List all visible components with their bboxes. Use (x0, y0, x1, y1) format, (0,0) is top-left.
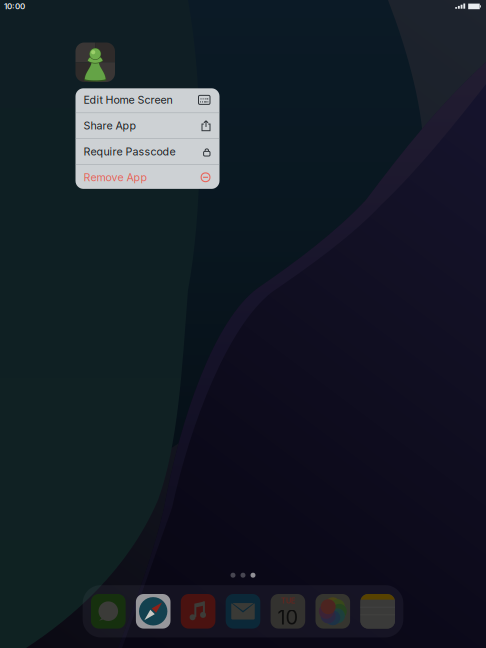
staticText: Require Passcode (83, 145, 175, 158)
button[interactable]: Share App (75, 113, 219, 138)
button[interactable]: Calendar (271, 594, 305, 629)
staticText: Edit Home Screen (83, 93, 172, 106)
button[interactable]: Messages (91, 594, 126, 629)
button[interactable]: Safari (136, 594, 170, 629)
staticText: Remove App (83, 171, 147, 184)
button[interactable]: Notes (360, 594, 395, 629)
button[interactable]: Require Passcode (75, 139, 219, 164)
button[interactable]: Edit Home Screen (75, 87, 219, 112)
button[interactable]: Remove App (75, 165, 219, 190)
staticText: Share App (83, 119, 136, 132)
staticText: 10:00 (4, 1, 25, 11)
staticText: TUE (281, 596, 295, 605)
staticText: 10 (277, 605, 298, 629)
button[interactable]: Mail (226, 594, 260, 629)
button[interactable]: Photos (315, 594, 350, 629)
button[interactable]: Music (181, 594, 215, 629)
